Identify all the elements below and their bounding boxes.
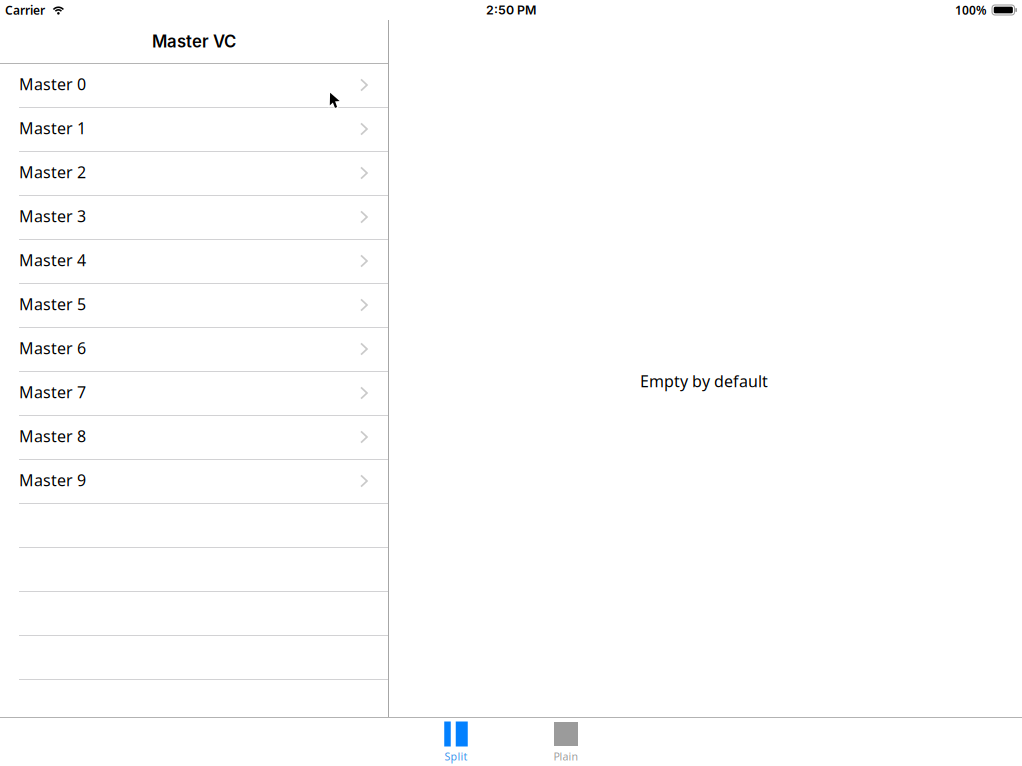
staticText: Master VC bbox=[152, 31, 236, 52]
staticText: Master 5 bbox=[19, 293, 86, 315]
staticText: 100% bbox=[955, 2, 987, 18]
button[interactable]: Master 2 bbox=[0, 152, 388, 196]
button[interactable] bbox=[0, 548, 388, 592]
staticText: Plain bbox=[553, 749, 578, 763]
button[interactable]: Master 5 bbox=[0, 284, 388, 328]
staticText: Master 9 bbox=[19, 469, 86, 491]
staticText: Split bbox=[444, 749, 467, 763]
button[interactable] bbox=[0, 504, 388, 548]
button[interactable]: Master 7 bbox=[0, 372, 388, 416]
button[interactable]: Master 4 bbox=[0, 240, 388, 284]
button[interactable]: Split bbox=[401, 717, 511, 766]
staticText: Master 1 bbox=[19, 117, 86, 139]
staticText: Carrier bbox=[5, 2, 45, 18]
staticText: Master 4 bbox=[19, 249, 86, 271]
staticText: Master 2 bbox=[19, 161, 86, 183]
button[interactable] bbox=[0, 592, 388, 636]
button[interactable]: Master 9 bbox=[0, 460, 388, 504]
staticText: Master 7 bbox=[19, 381, 86, 403]
button[interactable]: Master 6 bbox=[0, 328, 388, 372]
button[interactable]: Master 8 bbox=[0, 416, 388, 460]
button[interactable]: Master 1 bbox=[0, 108, 388, 152]
staticText: Empty by default bbox=[640, 370, 768, 392]
button[interactable] bbox=[0, 636, 388, 680]
staticText: Master 3 bbox=[19, 205, 86, 227]
button[interactable] bbox=[0, 680, 388, 724]
staticText: Master 0 bbox=[19, 73, 86, 95]
button[interactable]: Master 3 bbox=[0, 196, 388, 240]
staticText: Master 8 bbox=[19, 425, 86, 447]
staticText: 2:50 PM bbox=[486, 2, 536, 17]
button[interactable]: Master 0 bbox=[0, 64, 388, 108]
button[interactable]: Plain bbox=[511, 717, 621, 766]
staticText: Master 6 bbox=[19, 337, 86, 359]
